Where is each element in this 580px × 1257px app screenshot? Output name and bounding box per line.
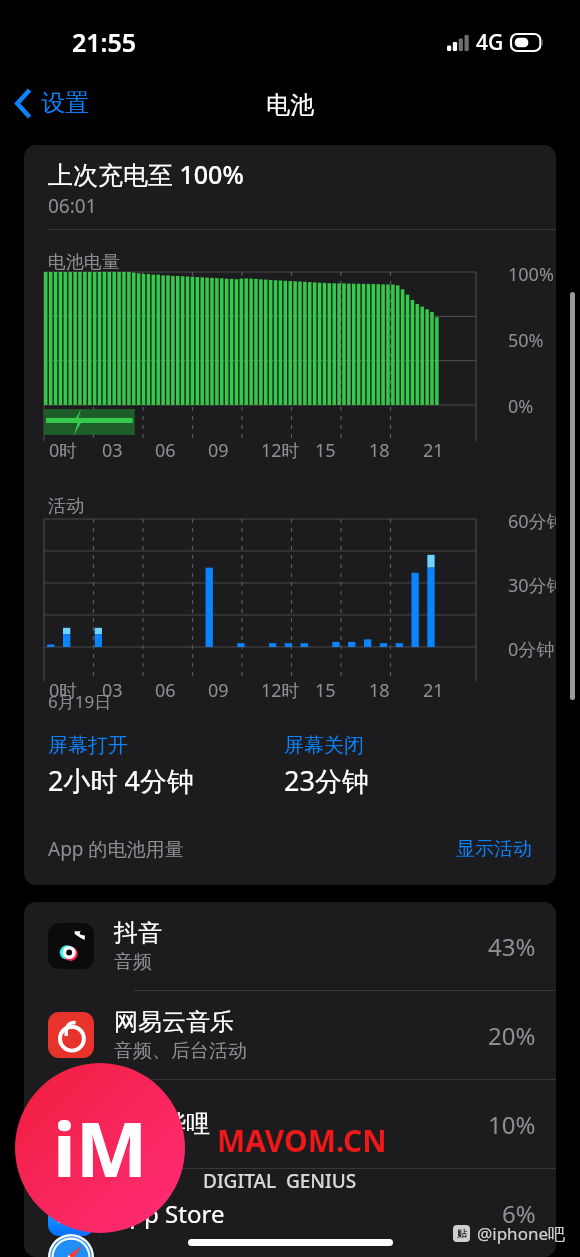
staticText: 6月19日 — [48, 690, 112, 713]
staticText: @iphone吧 — [477, 1222, 566, 1245]
staticText: 50% — [508, 328, 544, 353]
staticText: 60分钟 — [508, 509, 556, 534]
staticText: 电池 — [266, 90, 314, 120]
staticText: 贴 — [457, 1227, 467, 1240]
staticText: 网易云音乐 — [114, 1007, 234, 1037]
staticText: 06 — [155, 438, 176, 463]
staticText: MAVOM.CN — [217, 1120, 387, 1161]
staticText: 21:55 — [72, 25, 137, 59]
staticText: 上次充电至 100% — [48, 157, 244, 191]
staticText: 03 — [102, 678, 123, 703]
staticText: 06 — [155, 678, 176, 703]
staticText: 0时 — [49, 678, 78, 703]
staticText: 抖音 — [114, 918, 162, 948]
staticText: 0时 — [49, 438, 78, 463]
staticText: 18 — [369, 438, 390, 463]
button[interactable]: 哔哩哔哩 — [24, 1080, 556, 1168]
staticText: 21 — [423, 438, 444, 463]
button[interactable]: App Store — [24, 1169, 556, 1257]
staticText: 设置 — [41, 88, 89, 118]
staticText: 0分钟 — [508, 637, 555, 662]
staticText: 哔哩哔哩 — [114, 1109, 210, 1139]
staticText: 18 — [369, 678, 390, 703]
staticText: 10% — [488, 1108, 536, 1141]
staticText: 100% — [508, 262, 554, 287]
staticText: 12时 — [261, 678, 300, 703]
staticText: 屏幕关闭 — [284, 733, 364, 758]
staticText: 09 — [208, 438, 229, 463]
staticText: App Store — [114, 1197, 225, 1230]
staticText: 30分钟 — [508, 573, 556, 598]
button[interactable]: 设置 — [10, 84, 95, 122]
staticText: 23分钟 — [284, 762, 369, 799]
staticText: 活动 — [48, 495, 84, 518]
staticText: 显示活动 — [456, 837, 532, 861]
staticText: 43% — [488, 930, 536, 963]
staticText: iM — [53, 1096, 148, 1200]
staticText: 06:01 — [48, 193, 97, 219]
staticText: 0% — [508, 394, 534, 419]
staticText: App 的电池用量 — [48, 836, 184, 862]
staticText: 屏幕打开 — [48, 733, 128, 758]
staticText: 03 — [102, 438, 123, 463]
staticText: DIGITAL GENIUS — [203, 1168, 357, 1194]
staticText: 音频 — [114, 950, 152, 974]
staticText: 15 — [315, 438, 336, 463]
staticText: 2小时 4分钟 — [48, 762, 194, 799]
staticText: 15 — [315, 678, 336, 703]
staticText: 音频、后台活动 — [114, 1039, 247, 1063]
staticText: 21 — [423, 678, 444, 703]
button[interactable]: 显示活动 — [452, 833, 536, 865]
staticText: 4G — [476, 28, 504, 57]
staticText: 20% — [488, 1019, 536, 1052]
staticText: 09 — [208, 678, 229, 703]
staticText: 电池电量 — [48, 251, 120, 274]
staticText: 6% — [502, 1197, 536, 1230]
staticText: 12时 — [261, 438, 300, 463]
button[interactable]: 网易云音乐 — [24, 991, 556, 1079]
button[interactable]: 抖音 — [24, 902, 556, 990]
